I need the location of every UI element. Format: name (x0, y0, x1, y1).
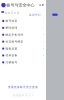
staticText: 账号与安全中心 (7, 3, 35, 7)
staticText: 查看更多账号安全选项 (8, 86, 38, 89)
staticText: 密码管理 (5, 26, 17, 29)
button[interactable]: 社交账号绑定 (0, 38, 46, 45)
staticText: 绑定手机号码 (5, 33, 23, 36)
staticText: 当前版本 8.2.1 (12, 93, 33, 97)
button[interactable]: 账号信息 (0, 17, 46, 24)
staticText: 隐私设置 (5, 47, 17, 50)
button[interactable]: 注销账号 (0, 59, 46, 66)
staticText: 账号信息 (5, 19, 17, 23)
staticText: 会员中心 (29, 13, 41, 17)
staticText: 注销账号 (5, 61, 17, 64)
button[interactable]: 登录设备 (0, 52, 46, 59)
button[interactable]: Search (39, 4, 41, 6)
staticText: 登录设备 (5, 54, 17, 57)
button[interactable]: 密码管理 (0, 24, 46, 31)
button[interactable]: 绑定手机号码 (0, 31, 46, 38)
button[interactable]: 查看更多账号安全选项 (0, 86, 46, 89)
button[interactable]: 隐私设置 (0, 45, 46, 52)
staticText: 社交账号绑定 (5, 40, 23, 43)
staticText: 实名已认证 (5, 11, 20, 14)
button[interactable]: Notifications (41, 4, 44, 6)
